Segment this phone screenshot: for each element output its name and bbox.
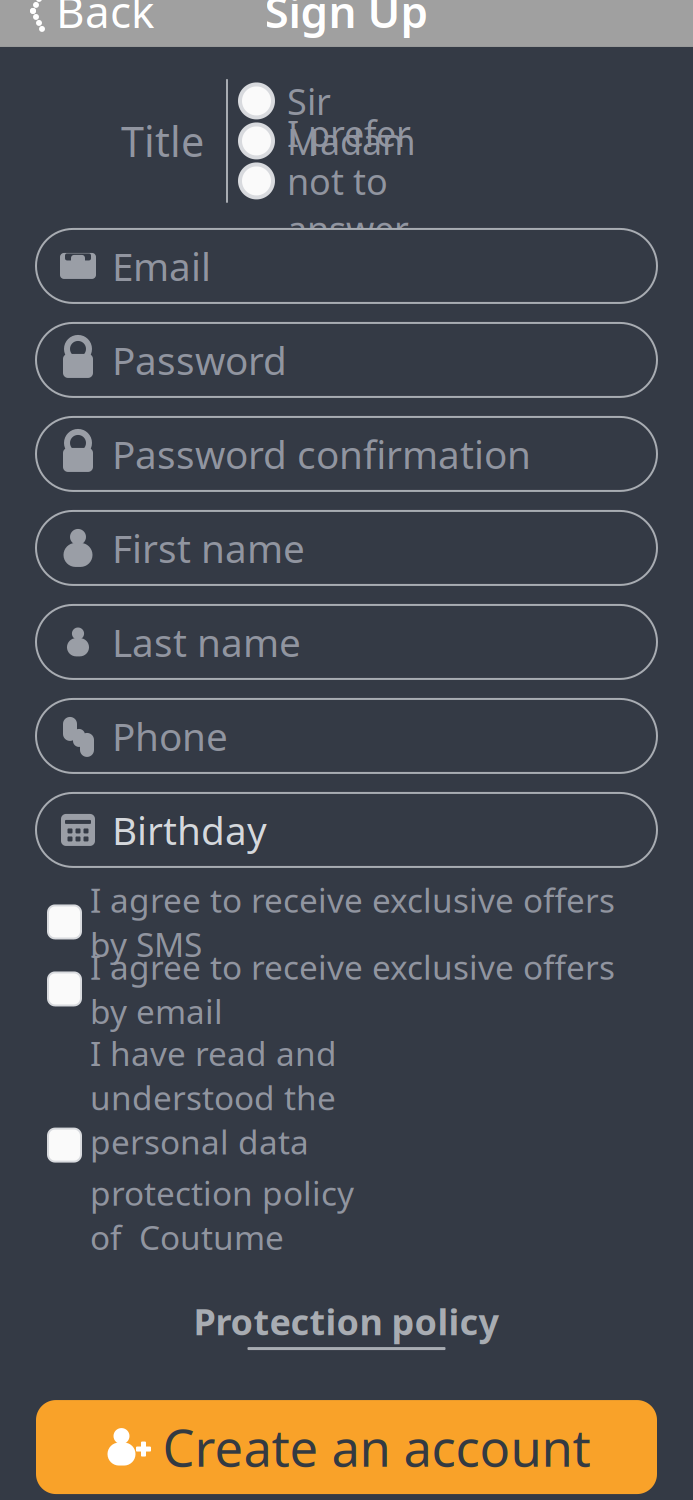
staticText: Last name — [112, 616, 301, 668]
button[interactable]: Madam — [240, 121, 460, 161]
staticText: First name — [112, 522, 305, 574]
staticText: Phone — [112, 710, 228, 762]
staticText: Create an account — [162, 1413, 590, 1481]
staticText: Birthday — [112, 804, 267, 856]
staticText: Password — [112, 334, 287, 386]
staticText: Sir — [287, 77, 331, 125]
button[interactable]: I prefer not to answer — [240, 161, 460, 201]
staticText: Back — [56, 0, 154, 40]
staticText: Madam — [287, 117, 416, 165]
staticText: Protection policy — [193, 1297, 499, 1345]
button[interactable]: Protection policy — [181, 1289, 511, 1358]
staticText: I agree to receive exclusive offers by e… — [90, 945, 615, 1033]
button[interactable]: Password confirmation — [36, 417, 657, 491]
button[interactable]: Email — [36, 229, 657, 303]
button[interactable]: I agree to receive exclusive offers by S… — [48, 897, 653, 947]
staticText: protection policy of Coutume — [90, 1171, 354, 1259]
button[interactable]: Create an account — [36, 1400, 657, 1494]
staticText: I have read and understood the personal … — [90, 1031, 337, 1164]
button[interactable]: Back — [0, 0, 170, 50]
button[interactable]: Phone — [36, 699, 657, 773]
staticText: Sign Up — [264, 0, 428, 40]
staticText: I prefer not to answer — [287, 109, 411, 253]
staticText: Password confirmation — [112, 428, 531, 480]
button[interactable]: First name — [36, 511, 657, 585]
button[interactable]: Password — [36, 323, 657, 397]
button[interactable]: Last name — [36, 605, 657, 679]
staticText: Email — [112, 240, 211, 292]
button[interactable]: I agree to receive exclusive offers by e… — [48, 964, 653, 1014]
button[interactable]: I have read and understood the personal … — [48, 1031, 653, 1259]
button[interactable]: Birthday — [36, 793, 657, 867]
staticText: Title — [121, 113, 204, 168]
staticText: I agree to receive exclusive offers by S… — [90, 878, 615, 966]
button[interactable]: Sir — [240, 81, 460, 121]
